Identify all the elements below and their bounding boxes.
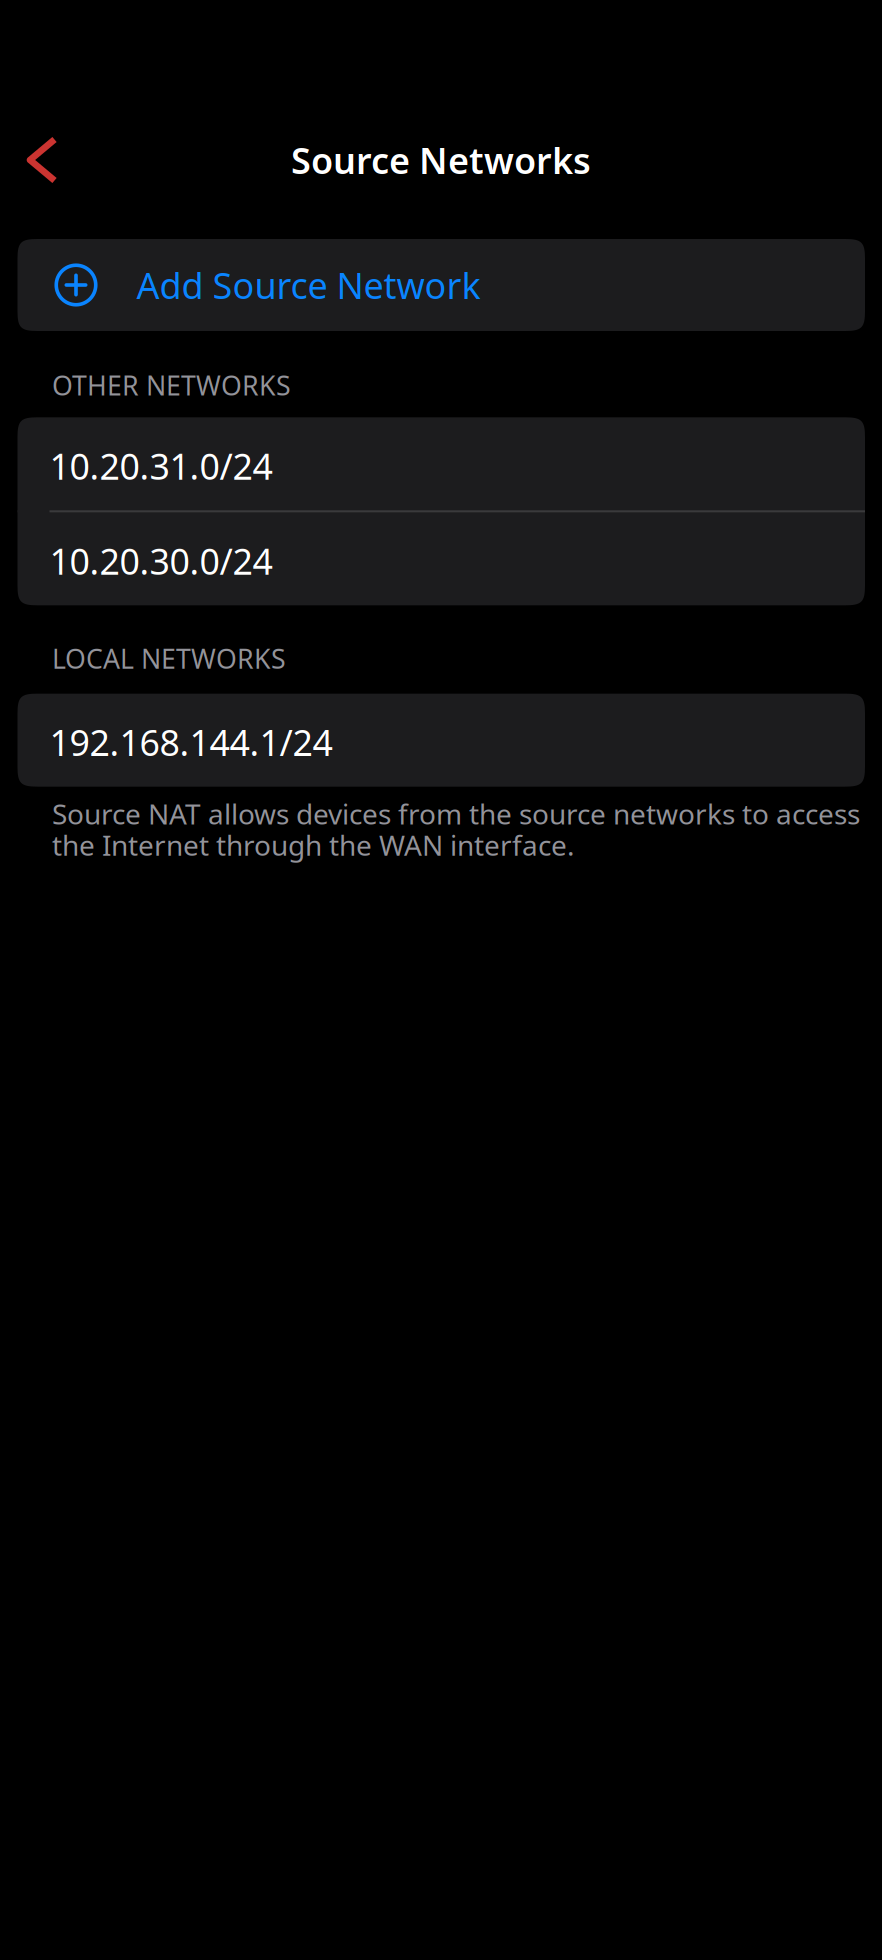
button[interactable]: 10.20.30.0/24 — [17, 512, 865, 605]
staticText: 10.20.30.0/24 — [49, 536, 272, 585]
button[interactable]: 192.168.144.1/24 — [17, 694, 865, 787]
staticText: Source NAT allows devices from the sourc… — [52, 795, 860, 864]
staticText: Source Networks — [291, 135, 591, 184]
staticText: Add Source Network — [136, 260, 480, 309]
staticText: 10.20.31.0/24 — [49, 441, 272, 490]
staticText: LOCAL NETWORKS — [52, 640, 286, 677]
staticText: OTHER NETWORKS — [52, 367, 291, 403]
button[interactable]: Add Source Network — [17, 239, 865, 331]
staticText: 192.168.144.1/24 — [49, 718, 332, 766]
button[interactable]: Back — [0, 122, 81, 198]
button[interactable]: 10.20.31.0/24 — [17, 417, 865, 510]
